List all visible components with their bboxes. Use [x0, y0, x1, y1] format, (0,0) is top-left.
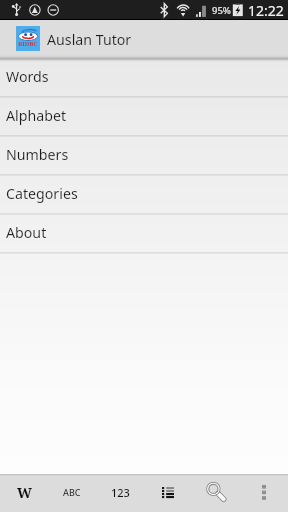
button[interactable]: Words [0, 59, 288, 98]
staticText: Numbers [6, 145, 69, 164]
other: Categories list [162, 487, 174, 499]
button[interactable]: ABC [48, 474, 96, 512]
staticText: Alphabet [6, 106, 67, 125]
staticText: RIDBC [18, 40, 38, 48]
button[interactable]: Categories list [144, 474, 192, 512]
staticText: Categories [6, 184, 78, 203]
staticText: 12:22 [248, 1, 284, 20]
button[interactable]: Search [192, 474, 240, 512]
other: Search [206, 482, 226, 502]
staticText: 123 [111, 485, 130, 500]
button[interactable]: About [0, 215, 288, 254]
staticText: About [6, 223, 47, 242]
staticText: ABC [63, 486, 81, 498]
staticText: Words [6, 67, 49, 86]
button[interactable]: W [0, 474, 48, 512]
button[interactable]: 123 [96, 474, 144, 512]
button[interactable]: More options [240, 474, 288, 512]
staticText: 95% [212, 4, 231, 17]
staticText: W [17, 483, 32, 502]
button[interactable]: Alphabet [0, 98, 288, 137]
other: More options [262, 485, 266, 501]
button[interactable]: Categories [0, 176, 288, 215]
staticText: Auslan Tutor [47, 30, 132, 49]
button[interactable]: Numbers [0, 137, 288, 176]
